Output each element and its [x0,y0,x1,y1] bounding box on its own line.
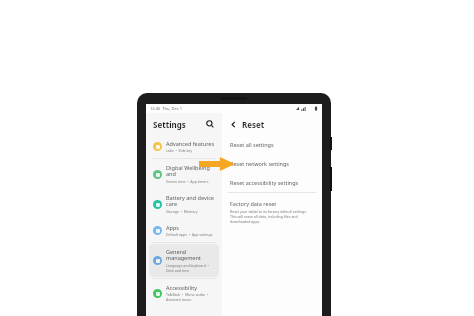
staticText: General management [166,248,201,262]
staticText: Advanced features [166,140,215,147]
staticText: 12:45 Thu, Dec 1 [150,106,183,111]
button[interactable]: Back [228,119,239,130]
button[interactable]: Reset network settings [226,154,318,173]
staticText: Storage • Memory [166,209,198,214]
staticText: Battery and device care [166,194,214,208]
staticText: Language and keyboard • Date and time [166,263,209,273]
staticText: Reset all settings [230,141,274,148]
button[interactable]: General management [149,244,219,277]
staticText: Reset network settings [230,160,289,167]
button[interactable]: Search [204,118,216,130]
button[interactable]: Reset all settings [226,135,318,154]
staticText: Labs • Side key [166,148,193,153]
staticText: Reset accessibility settings [230,179,299,186]
button[interactable]: Factory data reset [226,196,318,228]
staticText: Apps [166,224,179,231]
button[interactable]: Reset accessibility settings [226,173,318,192]
staticText: Reset your tablet to its factory default… [230,209,314,224]
staticText: Accessibility [166,284,198,291]
staticText: TalkBack • Mono audio • Assistant menu [166,292,209,302]
staticText: Reset [242,119,265,130]
button[interactable]: Advanced features [149,136,219,157]
button[interactable]: Accessibility [149,280,219,306]
staticText: Settings [153,119,186,130]
staticText: Default apps • App settings [166,232,213,237]
button[interactable]: Battery and device care [149,190,219,218]
button[interactable]: Apps [149,220,219,241]
staticText: Screen time • App timers [166,179,209,184]
button[interactable]: Digital Wellbeing and parental controls [149,160,219,188]
staticText: Factory data reset [230,200,277,207]
staticText: Digital Wellbeing and parental controls [166,164,215,178]
